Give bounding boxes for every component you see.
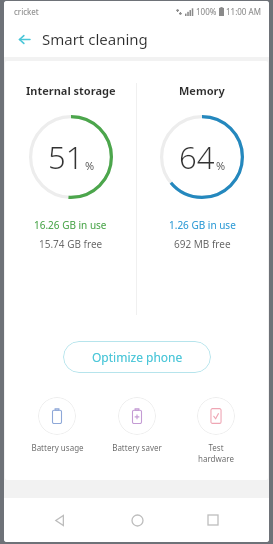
staticText: 1.26 GB in use (169, 218, 236, 232)
button[interactable]: Back (12, 27, 36, 51)
button[interactable]: Battery saver (99, 395, 175, 455)
staticText: Test hardware (198, 442, 234, 464)
staticText: % (85, 158, 95, 173)
staticText: 16.26 GB in use (34, 218, 107, 232)
staticText: cricket (14, 6, 39, 17)
staticText: Optimize phone (92, 349, 183, 365)
button[interactable]: Home (117, 500, 157, 540)
button[interactable]: Back (40, 500, 80, 540)
staticText: 64 (179, 136, 215, 178)
button[interactable]: Battery usage (19, 395, 95, 455)
staticText: Internal storage (26, 83, 116, 98)
button[interactable]: Recent apps (193, 500, 233, 540)
staticText: 11:00 AM (226, 6, 261, 17)
staticText: Memory (179, 83, 225, 98)
staticText: 51 (48, 136, 84, 178)
button[interactable]: Optimize phone (63, 341, 211, 373)
staticText: 15.74 GB free (39, 237, 103, 251)
staticText: 100% (196, 6, 217, 17)
staticText: Smart cleaning (42, 29, 148, 49)
staticText: 692 MB free (174, 237, 231, 251)
button[interactable]: Test hardware (178, 395, 254, 466)
staticText: Battery usage (31, 442, 84, 453)
staticText: % (216, 158, 226, 173)
staticText: Battery saver (112, 442, 162, 453)
